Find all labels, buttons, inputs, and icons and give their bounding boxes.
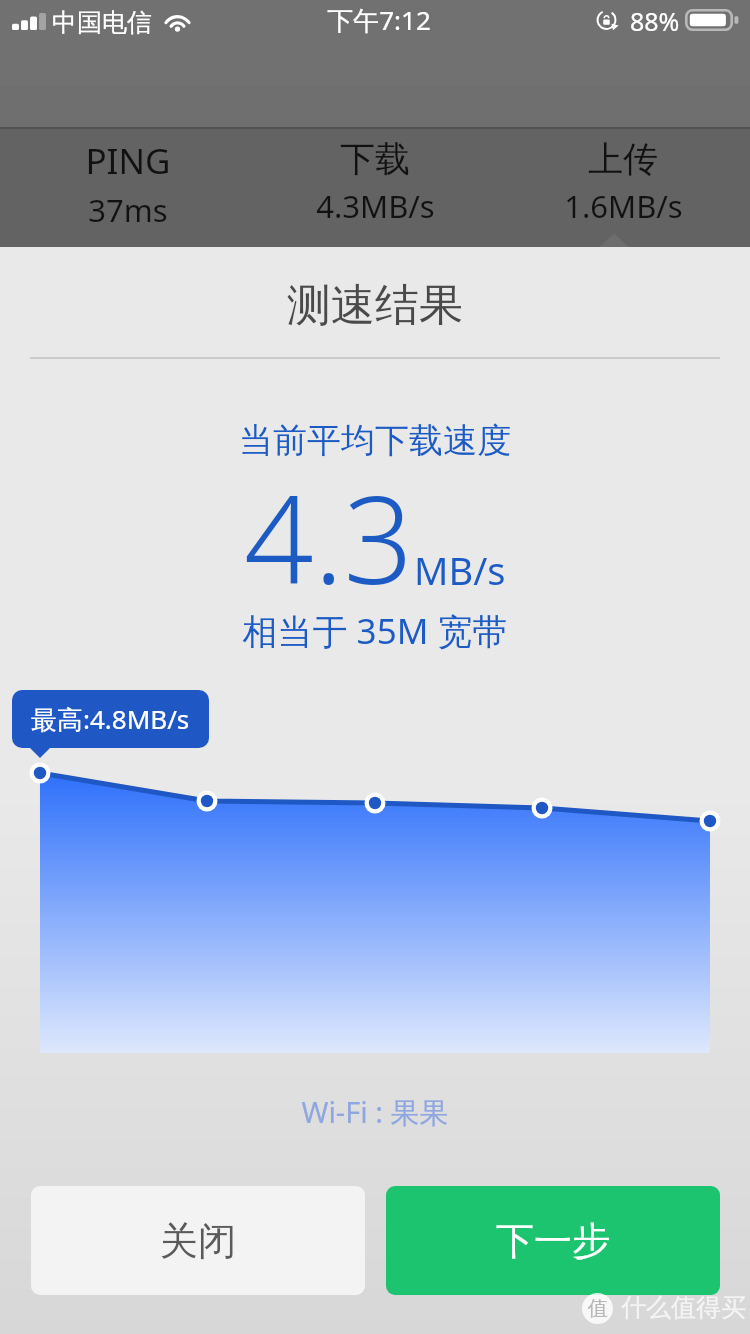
other: Cellular signal strength [12, 13, 46, 30]
button[interactable]: 下一步 [386, 1186, 720, 1295]
staticText: 88% [630, 4, 680, 38]
other: Battery 88 percent [685, 9, 739, 31]
staticText: 下午7:12 [4, 2, 750, 38]
staticText: 下载 [340, 137, 410, 181]
staticText: Wi-Fi : 果果 [0, 1092, 750, 1132]
staticText: PING [85, 137, 171, 185]
staticText: 1.6MB/s [564, 185, 683, 227]
other: Rotation lock [597, 10, 619, 30]
button[interactable]: 关闭 [31, 1186, 365, 1295]
staticText: 4.3 [244, 454, 414, 614]
staticText: 最高:4.8MB/s [31, 701, 190, 737]
staticText: 什么值得买 [621, 1292, 746, 1323]
staticText: 关闭 [160, 1217, 236, 1265]
other: Wi-Fi connected [162, 9, 193, 31]
staticText: 4.3MB/s [316, 185, 435, 227]
staticText: 下一步 [496, 1217, 610, 1265]
staticText: 测速结果 [0, 278, 750, 333]
staticText: 值 [588, 1296, 608, 1321]
staticText: 当前平均下载速度 [0, 419, 750, 462]
staticText: 中国电信 [52, 7, 152, 38]
button[interactable]: 最高:4.8MB/s [12, 690, 209, 748]
staticText: 37ms [88, 189, 168, 231]
button[interactable]: PING [8, 129, 248, 247]
staticText: 上传 [588, 137, 658, 181]
staticText: 相当于 35M 宽带 [0, 607, 750, 655]
staticText: MB/s [414, 544, 506, 596]
button[interactable]: 上传 [503, 129, 743, 247]
button[interactable]: 下载 [255, 129, 495, 247]
